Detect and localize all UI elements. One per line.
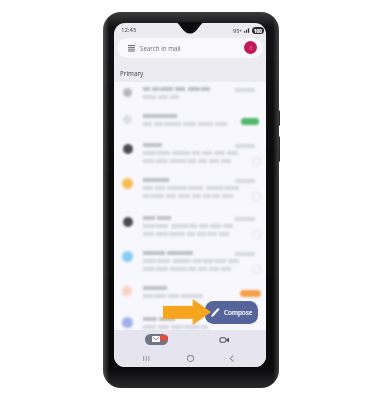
button[interactable]: Mail <box>145 334 168 345</box>
button[interactable] <box>114 312 266 333</box>
button[interactable]: Recents <box>140 352 152 364</box>
staticText: Primary <box>120 69 144 77</box>
staticText: Compose <box>224 308 253 317</box>
button[interactable] <box>114 82 266 103</box>
staticText: 95+ <box>233 27 243 34</box>
button[interactable] <box>114 138 266 167</box>
staticText: Search in mail <box>140 44 181 52</box>
button[interactable]: Home <box>184 352 196 364</box>
button[interactable] <box>114 211 266 240</box>
button[interactable] <box>114 173 266 202</box>
button[interactable] <box>114 109 266 130</box>
staticText: 12:45 <box>121 26 137 34</box>
button[interactable] <box>117 38 263 58</box>
staticText: 100 <box>254 28 262 34</box>
button[interactable]: Back <box>225 352 237 364</box>
button[interactable] <box>114 246 266 275</box>
button[interactable]: Compose <box>205 301 258 324</box>
button[interactable]: Open navigation menu <box>127 44 135 52</box>
button[interactable]: Account <box>244 41 257 54</box>
button[interactable]: Meet <box>217 333 231 347</box>
button[interactable] <box>114 281 266 302</box>
staticText: a <box>249 43 253 52</box>
